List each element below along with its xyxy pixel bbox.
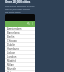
staticText: Berlin [7, 35, 15, 38]
staticText: Find transit directions in more than 20,… [5, 5, 35, 14]
button[interactable]: Munich [5, 67, 35, 71]
button[interactable]: London [5, 55, 35, 59]
staticText: Over 20,000 cities [5, 0, 31, 4]
button[interactable]: Berlin [5, 35, 35, 39]
staticText: Oslo [7, 71, 13, 72]
button[interactable]: Search [26, 21, 30, 25]
button[interactable]: More options [30, 21, 34, 25]
button[interactable]: Barcelona [5, 31, 35, 35]
staticText: Dublin [7, 43, 16, 46]
staticText: Chicago [7, 39, 17, 42]
staticText: Barcelona [7, 31, 20, 34]
staticText: Milan [7, 63, 14, 66]
button[interactable]: Hamburg [5, 47, 35, 51]
button[interactable]: Milan [5, 63, 35, 67]
staticText: London [7, 55, 17, 58]
button[interactable]: Amsterdam [5, 27, 35, 31]
staticText: Munich [7, 67, 17, 70]
button[interactable]: Dublin [5, 43, 35, 47]
staticText: Madrid [7, 59, 16, 62]
button[interactable]: Oslo [5, 71, 35, 72]
staticText: Hamburg [7, 47, 19, 50]
staticText: Amsterdam [7, 27, 22, 30]
button[interactable]: Madrid [5, 59, 35, 63]
button[interactable]: Lisbon [5, 51, 35, 55]
button[interactable]: Chicago [5, 39, 35, 43]
staticText: Lisbon [7, 51, 16, 54]
